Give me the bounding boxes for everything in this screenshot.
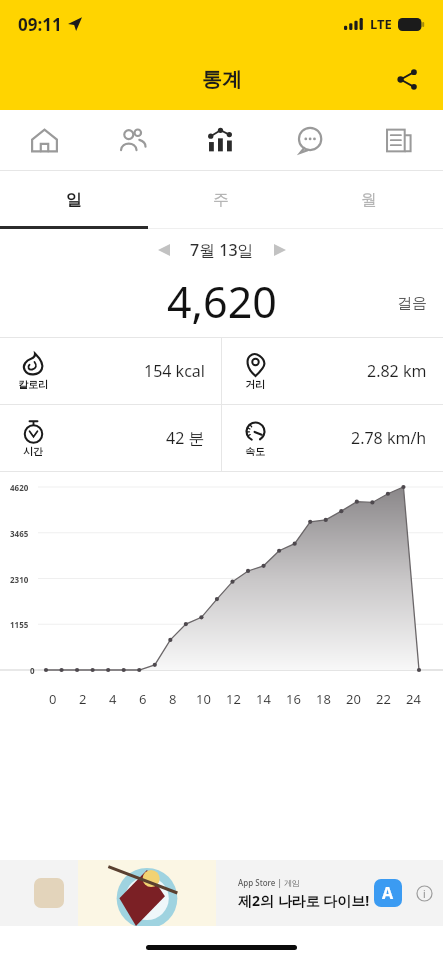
staticText: 속도: [245, 445, 265, 458]
staticText: LTE: [370, 15, 392, 33]
staticText: 4620: [10, 482, 29, 493]
staticText: 09:11: [18, 13, 62, 36]
staticText: 16: [286, 690, 301, 708]
staticText: 0: [49, 690, 57, 708]
staticText: 2310: [10, 574, 29, 585]
button[interactable]: 속도: [222, 405, 443, 471]
staticText: 154 kcal: [144, 360, 205, 382]
staticText: 칼로리: [18, 378, 48, 391]
button[interactable]: Friends: [88, 110, 176, 171]
staticText: 42 분: [166, 427, 205, 449]
button[interactable]: 시간: [0, 405, 221, 471]
staticText: 3465: [10, 528, 29, 539]
button[interactable]: 월: [295, 171, 443, 229]
staticText: 8: [169, 690, 177, 708]
staticText: 2: [79, 690, 87, 708]
button[interactable]: Statistics: [176, 110, 265, 171]
button[interactable]: App Store | 게임: [0, 860, 443, 926]
staticText: App Store | 게임: [238, 877, 300, 888]
staticText: 22: [376, 690, 391, 708]
staticText: 7월 13일: [190, 239, 254, 261]
button[interactable]: 주: [147, 171, 295, 229]
staticText: 2.78 km/h: [351, 427, 427, 449]
button[interactable]: Next day: [262, 232, 298, 268]
staticText: 시간: [23, 445, 43, 458]
staticText: 12: [226, 690, 241, 708]
button[interactable]: News: [354, 110, 443, 171]
staticText: 거리: [245, 378, 265, 391]
staticText: 통계: [202, 67, 242, 92]
button[interactable]: 일: [0, 171, 147, 229]
button[interactable]: Previous day: [146, 232, 182, 268]
staticText: 4: [109, 690, 117, 708]
button[interactable]: 거리: [222, 338, 443, 404]
staticText: 1155: [10, 619, 29, 630]
staticText: 20: [346, 690, 361, 708]
button[interactable]: Share: [385, 57, 429, 101]
staticText: 제2의 나라로 다이브!: [238, 891, 370, 910]
staticText: 4,620: [167, 272, 277, 331]
staticText: 0: [30, 665, 35, 676]
staticText: 10: [196, 690, 211, 708]
button[interactable]: Home: [0, 110, 88, 171]
staticText: 24: [406, 690, 421, 708]
other: Ad info: [416, 885, 433, 902]
staticText: 18: [316, 690, 331, 708]
staticText: 14: [256, 690, 271, 708]
staticText: 걸음: [397, 294, 427, 313]
staticText: 일: [66, 190, 82, 210]
staticText: 월: [361, 190, 377, 210]
staticText: 주: [213, 190, 229, 210]
button[interactable]: Chat: [265, 110, 354, 171]
staticText: A: [382, 882, 394, 904]
staticText: 2.82 km: [367, 360, 427, 382]
staticText: 6: [139, 690, 147, 708]
button[interactable]: 칼로리: [0, 338, 221, 404]
staticText: i: [423, 887, 426, 901]
